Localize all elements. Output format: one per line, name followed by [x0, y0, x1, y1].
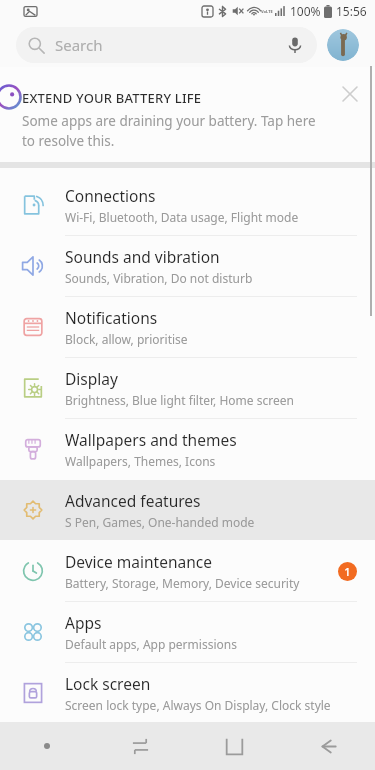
button[interactable]: Wallpapers and themes [0, 419, 375, 479]
button[interactable]: Dismiss [337, 81, 363, 107]
staticText: Notifications [65, 307, 158, 328]
button[interactable]: Search [16, 27, 317, 63]
staticText: Brightness, Blue light filter, Home scre… [65, 392, 294, 408]
staticText: Lock screen [65, 673, 151, 694]
button[interactable]: Advanced features [0, 480, 375, 540]
button[interactable]: Lock screen [0, 663, 375, 722]
staticText: Some apps are draining your battery. Tap… [22, 112, 331, 150]
button[interactable]: Connections [0, 175, 375, 235]
button[interactable]: Back [281, 722, 375, 770]
button[interactable]: Apps [0, 602, 375, 662]
staticText: S Pen, Games, One-handed mode [65, 514, 255, 530]
button[interactable]: Display [0, 358, 375, 418]
staticText: Search [55, 35, 103, 55]
button[interactable]: Account [327, 29, 359, 61]
staticText: Wallpapers and themes [65, 429, 237, 450]
staticText: EXTEND YOUR BATTERY LIFE [22, 89, 202, 107]
staticText: Sounds and vibration [65, 246, 220, 267]
staticText: Connections [65, 185, 156, 206]
staticText: VoLTE [261, 9, 273, 14]
staticText: 1 [344, 564, 351, 579]
staticText: Block, allow, prioritise [65, 331, 188, 347]
staticText: Display [65, 368, 118, 389]
staticText: Device maintenance [65, 551, 212, 572]
button[interactable]: Sounds and vibration [0, 236, 375, 296]
staticText: Advanced features [65, 490, 201, 511]
button[interactable]: Notifications [0, 297, 375, 357]
staticText: Wallpapers, Themes, Icons [65, 453, 216, 469]
staticText: Screen lock type, Always On Display, Clo… [65, 697, 331, 713]
staticText: Apps [65, 612, 102, 633]
staticText: Default apps, App permissions [65, 636, 237, 652]
button[interactable]: Notifications dot [0, 722, 93, 770]
staticText: Wi-Fi, Bluetooth, Data usage, Flight mod… [65, 209, 299, 225]
button[interactable]: Recents [93, 722, 187, 770]
staticText: Battery, Storage, Memory, Device securit… [65, 575, 300, 591]
staticText: Sounds, Vibration, Do not disturb [65, 270, 253, 286]
button[interactable]: Home [187, 722, 281, 770]
button[interactable]: Voice search [285, 35, 305, 55]
staticText: 15:56 [336, 3, 367, 19]
button[interactable]: EXTEND YOUR BATTERY LIFE [0, 67, 375, 162]
staticText: 100% [290, 3, 321, 19]
button[interactable]: Device maintenance [0, 541, 375, 601]
